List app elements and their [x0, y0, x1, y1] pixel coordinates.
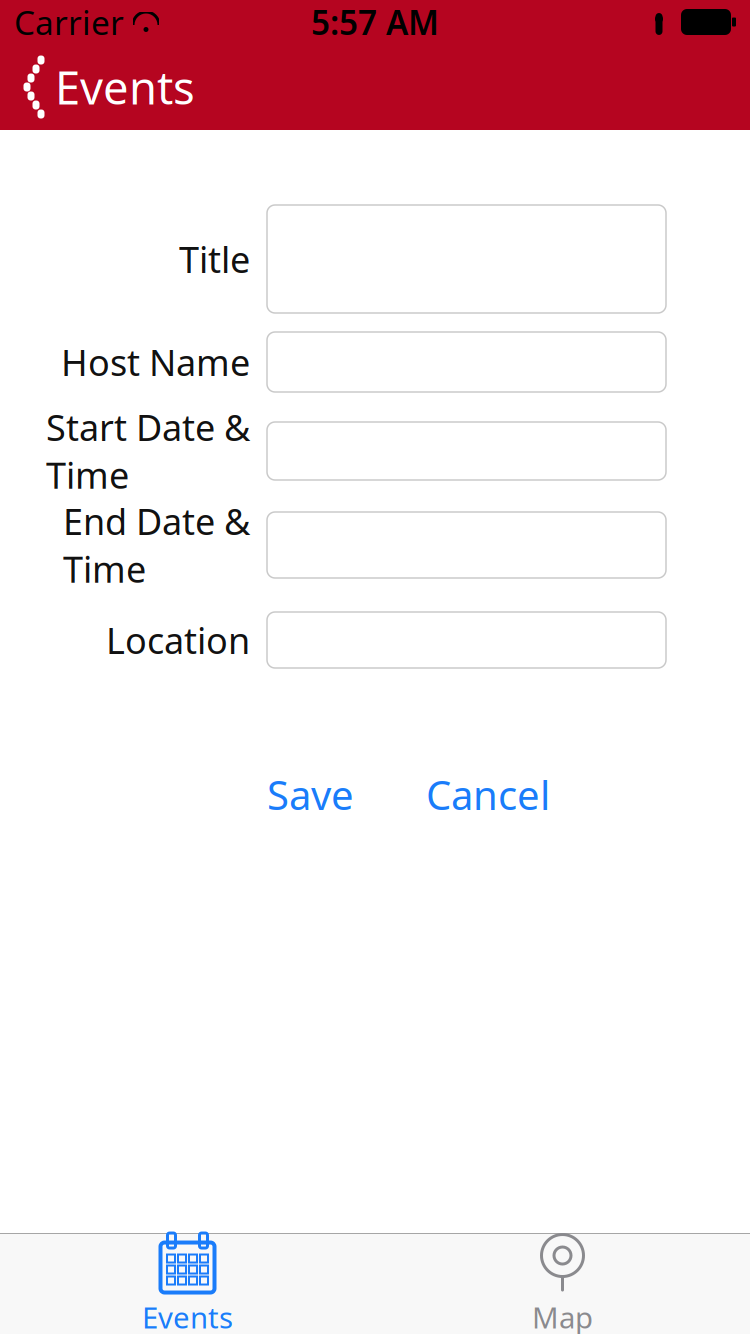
staticText: Map: [532, 1297, 593, 1334]
button[interactable]: [250, 205, 666, 313]
staticText: Events: [142, 1297, 233, 1334]
button[interactable]: [250, 332, 666, 392]
staticText: Carrier: [14, 0, 124, 44]
button[interactable]: Cancel: [421, 760, 555, 829]
staticText: Cancel: [426, 768, 550, 821]
staticText: End Date & Time: [63, 497, 250, 593]
button[interactable]: [250, 512, 666, 578]
button[interactable]: Events: [0, 1234, 375, 1334]
staticText: Start Date & Time: [46, 403, 250, 499]
button[interactable]: [250, 612, 666, 668]
staticText: Host Name: [61, 338, 250, 386]
staticText: 5:57 AM: [311, 0, 439, 44]
staticText: Save: [267, 768, 354, 821]
staticText: Events: [55, 57, 195, 117]
staticText: Location: [106, 616, 250, 664]
button[interactable]: [250, 422, 666, 480]
button[interactable]: Save: [262, 760, 359, 829]
button[interactable]: Events: [0, 44, 209, 130]
staticText: Title: [179, 235, 250, 283]
button[interactable]: Map: [375, 1234, 750, 1334]
